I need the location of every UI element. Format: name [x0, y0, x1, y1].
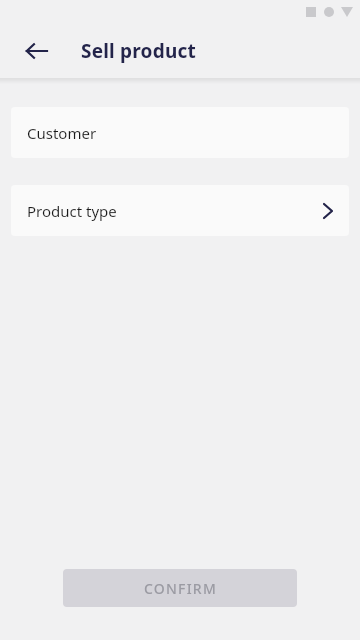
- staticText: Product type: [27, 201, 117, 221]
- button[interactable]: CONFIRM: [63, 569, 297, 607]
- staticText: CONFIRM: [144, 579, 217, 598]
- button[interactable]: Back: [14, 29, 58, 73]
- staticText: Customer: [27, 123, 97, 143]
- staticText: Sell product: [81, 38, 196, 64]
- button[interactable]: Product type: [11, 185, 349, 236]
- button[interactable]: Customer: [11, 107, 349, 158]
